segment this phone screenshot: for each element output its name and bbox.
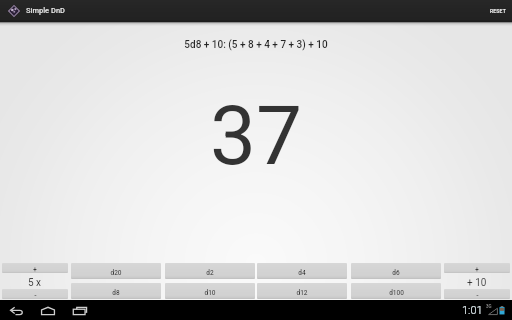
staticText: 3G	[486, 304, 492, 309]
staticText: d4	[298, 269, 306, 277]
button[interactable]: d8	[71, 283, 161, 299]
staticText: -	[476, 292, 479, 299]
staticText: d100	[389, 289, 404, 297]
staticText: d2	[206, 269, 214, 277]
staticText: d8	[112, 289, 120, 297]
staticText: 5 x	[28, 277, 42, 289]
button[interactable]: d6	[351, 263, 441, 279]
button[interactable]: +	[2, 263, 68, 273]
button[interactable]: d20	[71, 263, 161, 279]
button[interactable]: d2	[165, 263, 255, 279]
staticText: d6	[392, 269, 400, 277]
staticText: + 10	[467, 277, 487, 289]
staticText: d20	[110, 269, 122, 277]
staticText: -	[34, 292, 37, 299]
button[interactable]: -	[2, 289, 68, 299]
button[interactable]: Recent apps	[64, 300, 96, 320]
button[interactable]: Home	[32, 300, 64, 320]
button[interactable]: d4	[257, 263, 347, 279]
button[interactable]: -	[444, 289, 510, 299]
staticText: d12	[296, 289, 308, 297]
staticText: RESET	[490, 8, 506, 14]
staticText: 1:01	[462, 304, 483, 317]
staticText: 5d8 + 10: (5 + 8 + 4 + 7 + 3) + 10	[0, 39, 512, 51]
staticText: Simple DnD	[26, 6, 65, 15]
staticText: d10	[204, 289, 216, 297]
button[interactable]: RESET	[484, 0, 512, 22]
button[interactable]: +	[444, 263, 510, 273]
button[interactable]: Back	[0, 300, 32, 320]
staticText: +	[475, 266, 479, 273]
button[interactable]: d10	[165, 283, 255, 299]
button[interactable]: d100	[351, 283, 441, 299]
button[interactable]: d12	[257, 283, 347, 299]
staticText: +	[33, 266, 37, 273]
staticText: 37	[0, 88, 512, 184]
